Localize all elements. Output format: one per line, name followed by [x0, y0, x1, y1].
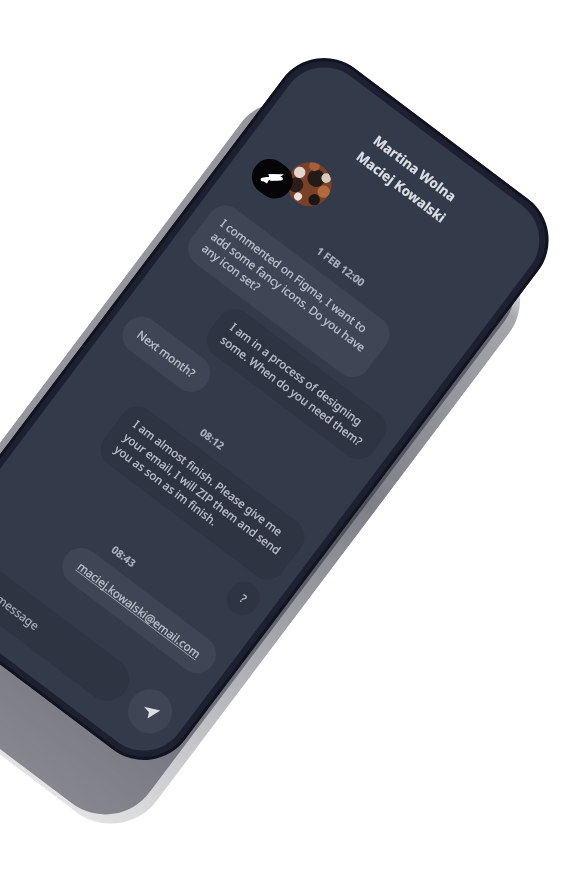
button[interactable]: I am in a process of designing some. Whe…: [199, 302, 394, 467]
staticText: 08:43: [109, 542, 139, 570]
button[interactable]: Next month?: [115, 309, 218, 399]
staticText: I commented on Figma, I want to add some…: [199, 216, 379, 367]
button[interactable]: Send message: [119, 681, 181, 742]
button[interactable]: Write a message: [0, 542, 138, 710]
button[interactable]: App logo: [245, 152, 300, 206]
staticText: Next month?: [134, 327, 199, 382]
button[interactable]: Contact avatar: [279, 153, 340, 215]
button[interactable]: ?: [221, 576, 266, 622]
staticText: maciej.kowalski@email.com: [74, 559, 204, 662]
staticText: Maciej Kowalski: [353, 147, 450, 227]
staticText: 08:12: [197, 425, 227, 452]
button[interactable]: I commented on Figma, I want to add some…: [181, 198, 397, 385]
staticText: 1 FEB 12:00: [314, 244, 368, 290]
staticText: Martina Wolna: [370, 131, 460, 206]
staticText: I am almost finish. Please give me your …: [112, 417, 293, 569]
staticText: I am in a process of designing some. Whe…: [218, 319, 375, 449]
button[interactable]: maciej.kowalski@email.com: [55, 540, 224, 681]
staticText: Write a message: [0, 564, 43, 633]
staticText: ?: [236, 591, 250, 607]
button[interactable]: I am almost finish. Please give me your …: [93, 399, 312, 587]
